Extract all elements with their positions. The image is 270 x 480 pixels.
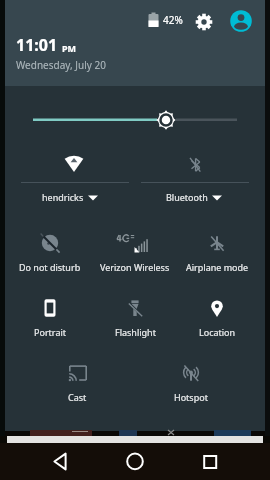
button[interactable] [229, 9, 253, 33]
staticText: Bluetooth [166, 191, 208, 203]
button[interactable]: Verizon Wireless [90, 225, 180, 290]
staticText: Wednesday, July 20 [16, 58, 106, 72]
staticText: Location [199, 326, 236, 338]
button[interactable]: hendricks [10, 148, 140, 210]
button[interactable]: Location [172, 290, 262, 355]
button[interactable]: Bluetooth [130, 148, 260, 210]
staticText: Portrait [34, 326, 67, 338]
button[interactable] [20, 104, 250, 136]
staticText: Do not disturb [19, 261, 81, 273]
button[interactable] [117, 446, 153, 478]
button[interactable] [192, 446, 228, 478]
staticText: PM [62, 42, 77, 54]
staticText: 42% [163, 13, 183, 27]
button[interactable]: Flashlight [90, 290, 180, 355]
button[interactable] [42, 446, 78, 478]
button[interactable]: Hotspot [146, 355, 236, 420]
button[interactable]: Cast [32, 355, 122, 420]
staticText: hendricks [42, 191, 84, 203]
staticText: Hotspot [174, 391, 208, 403]
staticText: Verizon Wireless [100, 261, 170, 273]
staticText: 11:01 [16, 34, 58, 56]
button[interactable]: Do not disturb [5, 225, 95, 290]
button[interactable] [194, 12, 214, 32]
staticText: Flashlight [115, 326, 156, 338]
button[interactable]: Airplane mode [172, 225, 262, 290]
button[interactable]: Portrait [5, 290, 95, 355]
staticText: Airplane mode [186, 261, 249, 273]
staticText: Cast [68, 391, 87, 403]
